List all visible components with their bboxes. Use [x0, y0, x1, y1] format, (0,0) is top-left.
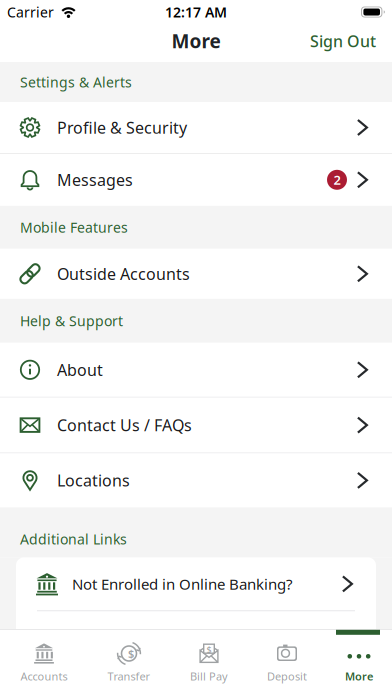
staticText: More — [345, 669, 373, 684]
staticText: Contact Us / FAQs — [57, 414, 192, 436]
button[interactable]: $ — [88, 629, 170, 696]
staticText: Help & Support — [20, 311, 123, 330]
button[interactable]: Contact Us / FAQs — [0, 398, 392, 453]
button[interactable]: Outside Accounts — [0, 249, 392, 299]
staticText: Locations — [57, 470, 130, 491]
staticText: Mobile Features — [20, 218, 128, 237]
staticText: Bill Pay — [190, 669, 228, 684]
staticText: $ — [206, 643, 211, 655]
staticText: Not Enrolled in Online Banking? — [72, 574, 293, 594]
button[interactable]: Accounts — [0, 629, 88, 696]
staticText: Settings & Alerts — [20, 73, 132, 91]
staticText: More — [171, 28, 220, 54]
button[interactable]: Profile & Security — [0, 102, 392, 153]
button[interactable]: Locations — [0, 453, 392, 507]
staticText: Profile & Security — [57, 117, 187, 138]
staticText: Sign Out — [310, 30, 376, 52]
staticText: Outside Accounts — [57, 263, 190, 284]
button[interactable]: $ — [170, 629, 248, 696]
button[interactable]: Deposit — [248, 629, 326, 696]
button[interactable]: Not Enrolled in Online Banking? — [16, 557, 376, 696]
staticText: $ — [128, 646, 134, 661]
button[interactable]: Messages — [0, 154, 392, 206]
staticText: 2 — [333, 171, 340, 188]
staticText: Transfer — [107, 669, 150, 684]
staticText: About — [57, 359, 103, 380]
staticText: 12:17 AM — [165, 3, 227, 21]
staticText: Carrier — [7, 3, 54, 21]
staticText: Accounts — [20, 669, 67, 684]
staticText: Deposit — [267, 669, 307, 684]
button[interactable]: About — [0, 343, 392, 397]
staticText: Messages — [57, 169, 133, 190]
staticText: Additional Links — [20, 530, 127, 548]
button[interactable]: More — [326, 629, 392, 696]
button[interactable]: Sign Out — [310, 30, 376, 52]
